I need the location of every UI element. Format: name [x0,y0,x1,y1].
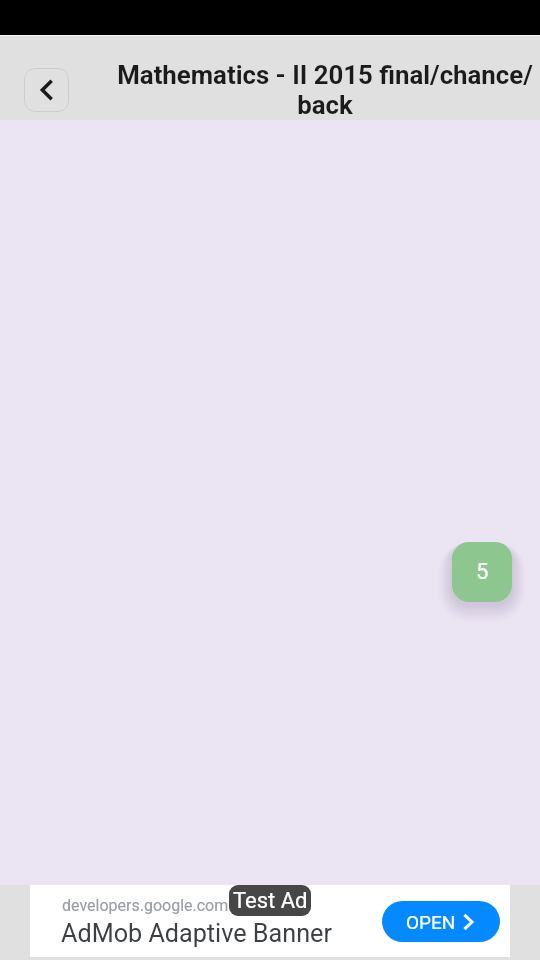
staticText: OPEN [406,911,456,933]
staticText: Mathematics - II 2015 final/chance/back [110,60,540,120]
staticText: developers.google.com [62,896,229,915]
staticText: Test Ad [233,888,308,914]
button[interactable]: AdMob Adaptive Banner advertisement [30,885,510,957]
button[interactable]: Back [24,68,69,112]
button[interactable]: OPEN [382,901,500,942]
staticText: 5 [476,559,489,585]
button[interactable]: Page 5 of questions [452,542,512,602]
staticText: AdMob Adaptive Banner [61,919,332,949]
